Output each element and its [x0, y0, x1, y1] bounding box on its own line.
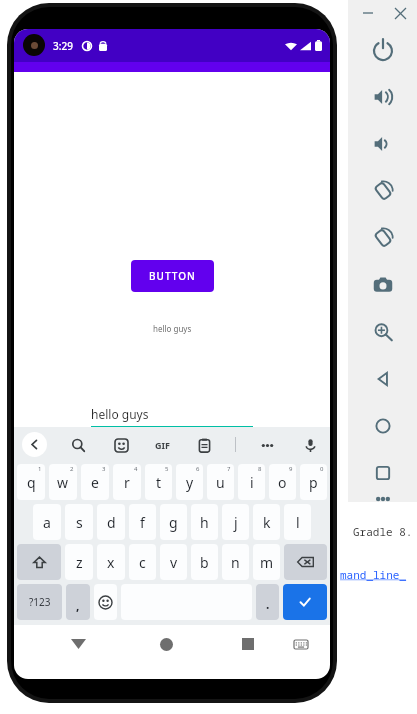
staticText: 1 — [38, 465, 42, 473]
staticText: k — [263, 513, 271, 532]
button[interactable]: i — [238, 464, 265, 500]
staticText: 4 — [134, 465, 138, 473]
button[interactable]: p — [300, 464, 327, 500]
button[interactable]: Zoom — [348, 308, 417, 355]
button[interactable]: . — [256, 584, 279, 620]
staticText: 2 — [70, 465, 74, 473]
button[interactable]: Rotate right — [348, 214, 417, 261]
button[interactable]: Recents — [233, 629, 263, 659]
staticText: 7 — [227, 465, 231, 473]
button[interactable]: m — [253, 544, 280, 580]
button[interactable]: Home — [348, 402, 417, 449]
button[interactable]: hello guys — [91, 406, 253, 427]
button[interactable]: t — [145, 464, 172, 500]
staticText: h — [200, 513, 209, 532]
button[interactable]: Clipboard — [192, 433, 216, 457]
button[interactable]: g — [160, 504, 187, 540]
button[interactable]: Switch keyboard — [288, 631, 314, 657]
button[interactable]: Volume up — [348, 73, 417, 120]
staticText: Gradle 8. — [353, 524, 413, 539]
button[interactable]: e — [81, 464, 109, 500]
button[interactable]: a — [33, 504, 61, 540]
button[interactable]: BUTTON — [131, 260, 214, 292]
staticText: 6 — [196, 465, 200, 473]
button[interactable]: Voice input — [298, 433, 322, 457]
button[interactable]: Recents — [348, 449, 417, 496]
staticText: n — [231, 553, 240, 572]
button[interactable]: Power — [348, 26, 417, 73]
staticText: 3:29 — [53, 39, 73, 53]
staticText: j — [234, 513, 238, 532]
staticText: e — [91, 473, 99, 492]
staticText: ?123 — [29, 595, 51, 609]
button[interactable]: mand_line_ — [340, 567, 406, 582]
button[interactable]: Back — [63, 629, 93, 659]
button[interactable]: x — [97, 544, 125, 580]
staticText: hello guys — [91, 406, 149, 422]
button[interactable]: w — [49, 464, 77, 500]
button[interactable]: More options — [255, 433, 279, 457]
button[interactable]: n — [222, 544, 249, 580]
button[interactable]: Stickers — [109, 433, 133, 457]
button[interactable]: q — [17, 464, 45, 500]
button[interactable]: c — [129, 544, 156, 580]
staticText: 3 — [102, 465, 106, 473]
button[interactable]: r — [113, 464, 141, 500]
button[interactable]: , — [66, 584, 90, 620]
button[interactable]: Back — [348, 355, 417, 402]
button[interactable]: f — [129, 504, 156, 540]
button[interactable]: Shift — [17, 544, 61, 580]
staticText: q — [27, 473, 36, 492]
button[interactable]: Screenshot — [348, 261, 417, 308]
button[interactable]: u — [207, 464, 234, 500]
staticText: 8 — [258, 465, 262, 473]
staticText: 5 — [165, 465, 169, 473]
staticText: s — [76, 513, 83, 532]
button[interactable]: Back — [22, 432, 47, 457]
button[interactable]: v — [160, 544, 187, 580]
staticText: GIF — [155, 439, 170, 451]
button[interactable]: Volume down — [348, 120, 417, 167]
staticText: c — [139, 553, 146, 572]
staticText: r — [124, 473, 130, 492]
button[interactable]: j — [222, 504, 249, 540]
button[interactable]: b — [191, 544, 218, 580]
button[interactable]: Minimize — [357, 2, 379, 24]
staticText: u — [216, 473, 225, 492]
button[interactable]: z — [65, 544, 93, 580]
button[interactable]: Search — [66, 433, 90, 457]
staticText: m — [260, 553, 274, 572]
staticText: BUTTON — [149, 269, 196, 283]
button[interactable]: GIF — [152, 436, 173, 454]
staticText: t — [156, 473, 162, 492]
staticText: p — [309, 473, 318, 492]
button[interactable]: Close — [389, 2, 411, 24]
staticText: d — [107, 513, 116, 532]
button[interactable]: Home — [151, 629, 181, 659]
button[interactable]: d — [97, 504, 125, 540]
button[interactable]: Emoji — [94, 584, 117, 620]
button[interactable]: Rotate left — [348, 167, 417, 214]
button[interactable]: k — [253, 504, 280, 540]
button[interactable]: More — [348, 496, 417, 502]
staticText: o — [278, 473, 287, 492]
button[interactable]: ?123 — [17, 584, 62, 620]
button[interactable]: s — [65, 504, 93, 540]
staticText: , — [76, 597, 80, 613]
staticText: . — [266, 596, 270, 612]
button[interactable]: y — [176, 464, 203, 500]
button[interactable]: h — [191, 504, 218, 540]
staticText: 0 — [320, 465, 324, 473]
button[interactable]: o — [269, 464, 296, 500]
button[interactable]: l — [284, 504, 311, 540]
staticText: i — [250, 473, 254, 492]
staticText: w — [57, 473, 69, 492]
button[interactable]: Enter — [283, 584, 327, 620]
staticText: y — [186, 473, 194, 492]
staticText: l — [296, 513, 300, 532]
staticText: g — [169, 513, 178, 532]
staticText: b — [200, 553, 209, 572]
button[interactable]: Backspace — [284, 544, 327, 580]
staticText: x — [107, 553, 115, 572]
